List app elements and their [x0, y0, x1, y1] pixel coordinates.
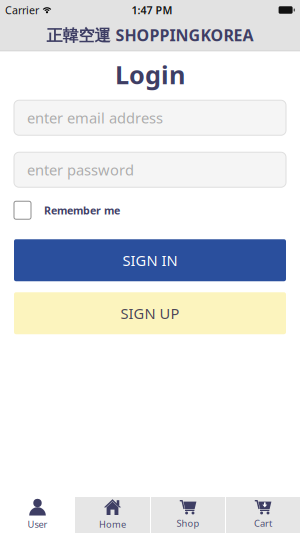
button[interactable]: SIGN IN [0, 239, 300, 281]
button[interactable]: User [0, 497, 75, 533]
staticText: User [27, 518, 47, 530]
button[interactable]: Home [75, 497, 150, 533]
staticText: 1:47 PM [131, 3, 172, 17]
staticText: Login [115, 58, 185, 91]
staticText: Shop [176, 517, 199, 529]
staticText: 正韓空運 SHOPPINGKOREA [46, 24, 253, 46]
staticText: Cart [254, 517, 272, 529]
button[interactable]: Remember me [0, 201, 300, 219]
staticText: enter password [27, 160, 134, 179]
staticText: SIGN UP [120, 303, 179, 323]
button[interactable]: Shop [151, 497, 225, 533]
button[interactable]: Cart [226, 497, 300, 533]
staticText: Remember me [44, 203, 120, 217]
staticText: SIGN IN [122, 250, 177, 270]
button[interactable]: enter password [0, 152, 300, 187]
button[interactable]: enter email address [0, 100, 300, 135]
button[interactable]: SIGN UP [0, 292, 300, 334]
staticText: Home [99, 518, 126, 530]
staticText: Carrier [5, 3, 39, 17]
staticText: enter email address [27, 108, 163, 127]
